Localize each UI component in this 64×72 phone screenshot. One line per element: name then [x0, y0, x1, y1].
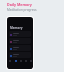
- button[interactable]: [9, 45, 31, 51]
- button[interactable]: [9, 31, 31, 37]
- button[interactable]: Tab 3: [23, 58, 28, 64]
- button[interactable]: Tab 0: [7, 58, 13, 64]
- button[interactable]: Tab 2: [18, 58, 23, 64]
- staticText: Meditation progress: [7, 8, 37, 12]
- button[interactable]: [9, 52, 31, 58]
- button[interactable]: Tab 4: [28, 58, 33, 64]
- button[interactable]: Tab 1: [13, 58, 18, 64]
- button[interactable]: [9, 38, 31, 44]
- staticText: Daily Memory: [7, 2, 32, 7]
- staticText: Memory: [10, 26, 23, 30]
